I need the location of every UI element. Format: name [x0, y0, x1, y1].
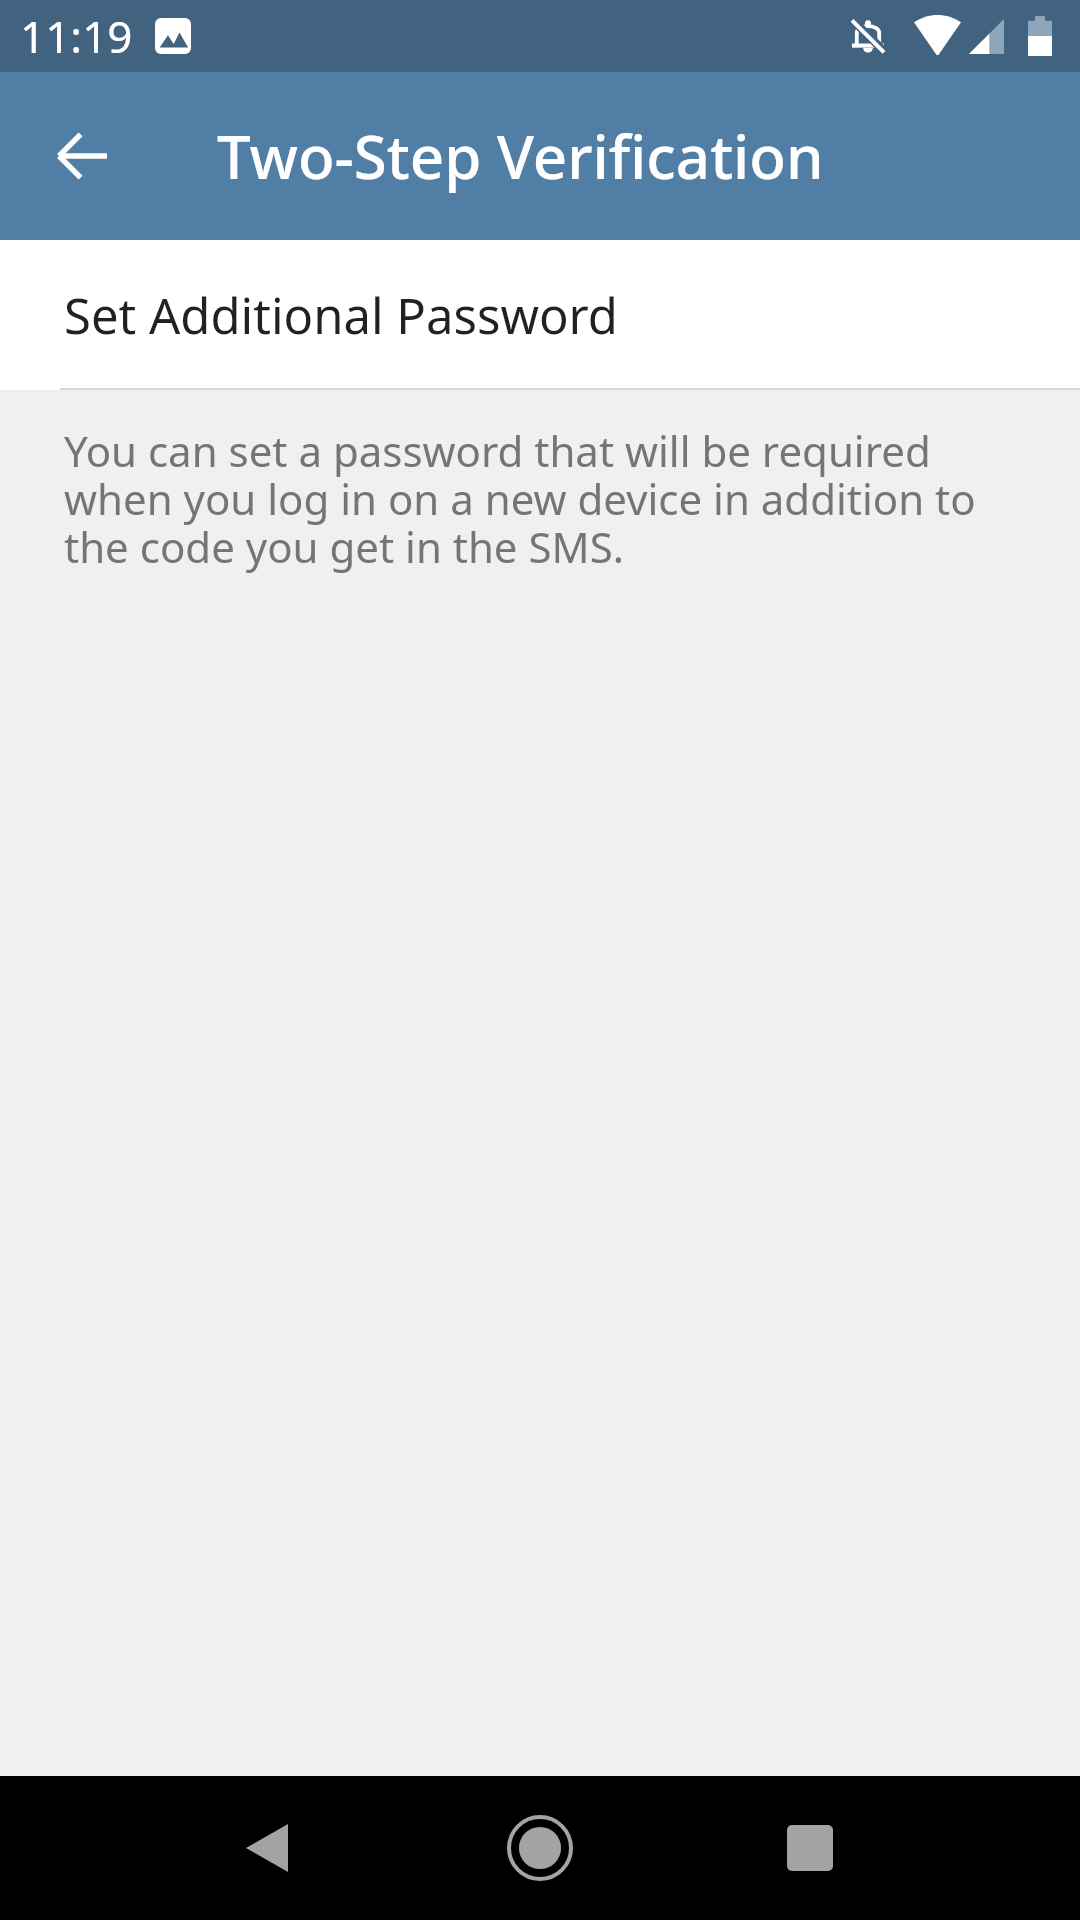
staticText: 11:19 — [20, 6, 133, 66]
button[interactable]: Recent apps — [750, 1788, 870, 1908]
button[interactable]: Home — [480, 1788, 600, 1908]
button[interactable]: Back — [207, 1788, 327, 1908]
staticText: Two-Step Verification — [217, 115, 824, 197]
button[interactable]: Set Additional Password — [0, 240, 1080, 390]
button[interactable]: Back — [35, 108, 131, 204]
staticText: Set Additional Password — [64, 282, 618, 349]
staticText: You can set a password that will be requ… — [64, 422, 1010, 575]
